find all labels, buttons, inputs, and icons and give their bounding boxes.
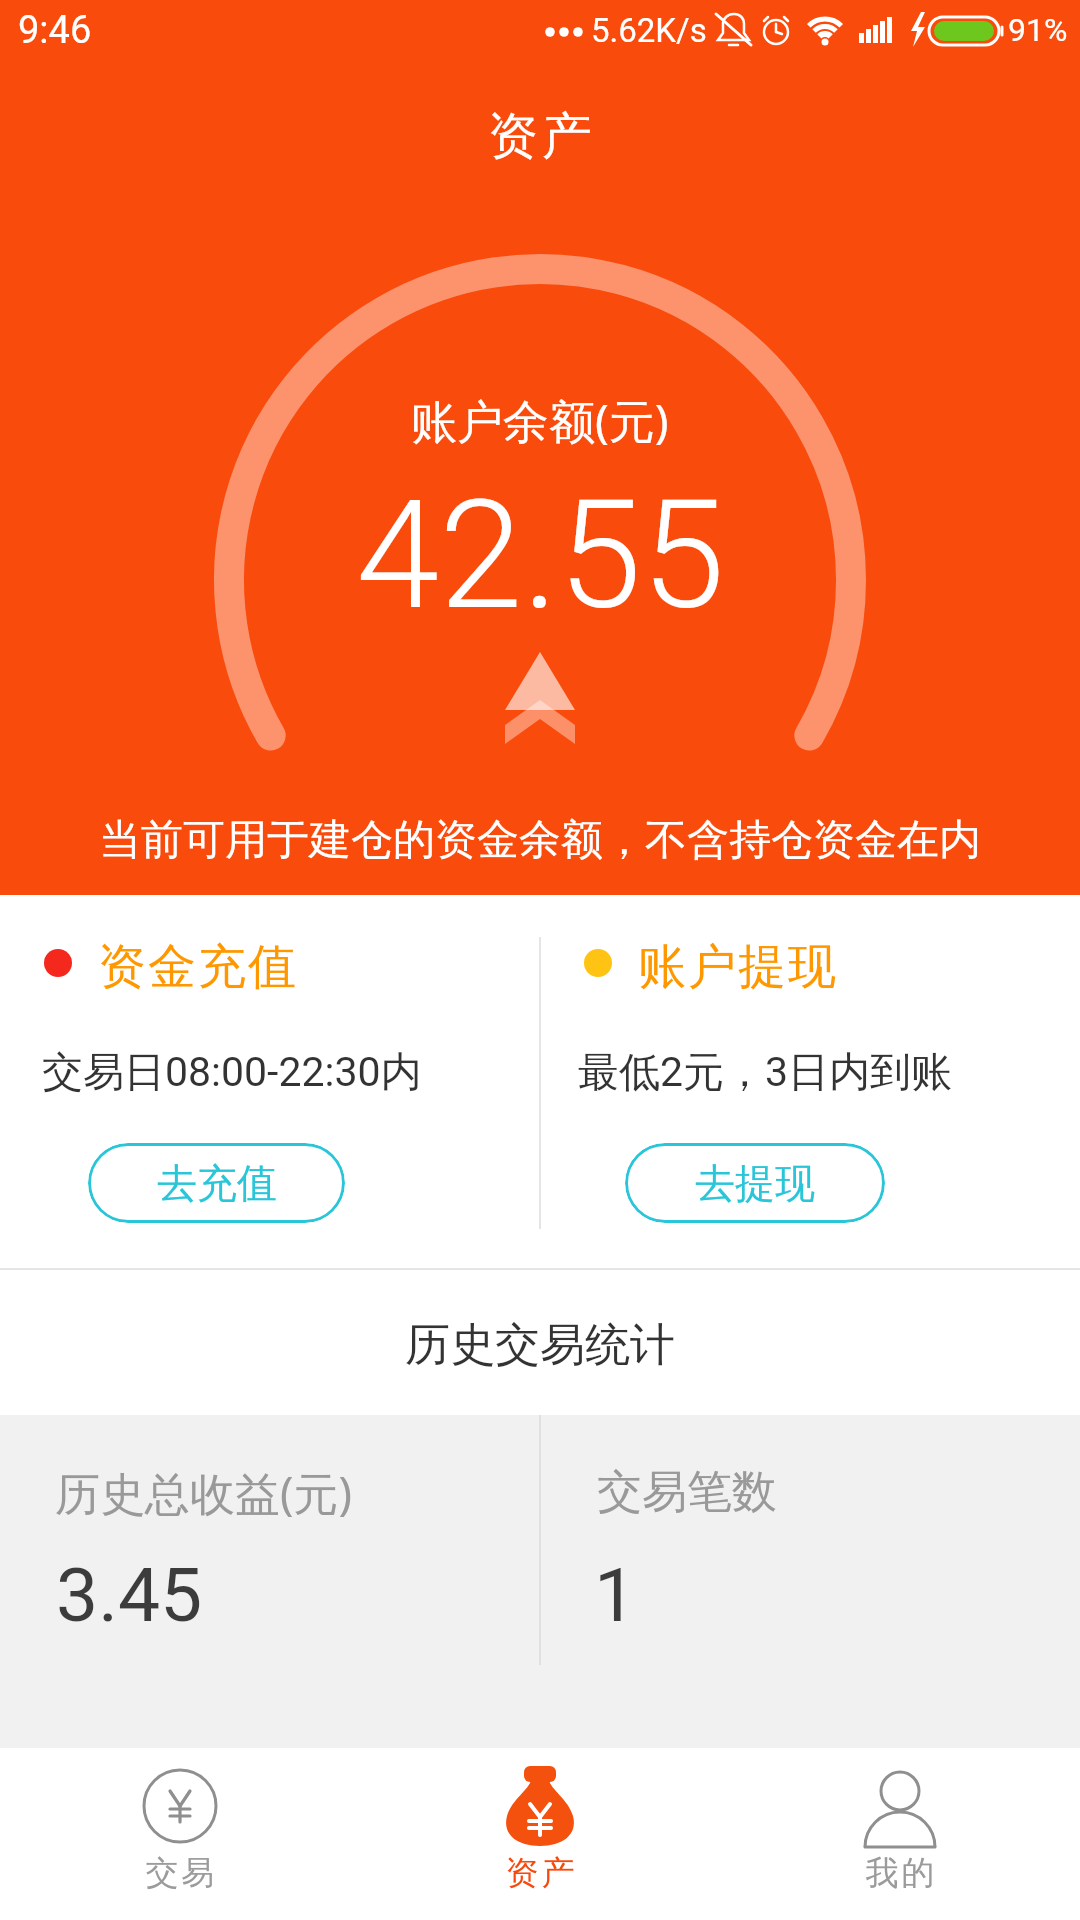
staticText: 最低2元，3日内到账 (578, 1047, 953, 1099)
button[interactable]: 资产 (360, 1748, 720, 1920)
staticText: 3.45 (56, 1551, 203, 1639)
button[interactable]: 去充值 (88, 1143, 345, 1223)
staticText: 我的 (864, 1852, 936, 1894)
staticText: 42.55 (356, 468, 725, 644)
staticText: 去充值 (157, 1158, 277, 1208)
staticText: 账户提现 (637, 937, 837, 997)
staticText: 资产 (504, 1852, 576, 1894)
staticText: 去提现 (695, 1158, 815, 1208)
staticText: 交易 (144, 1852, 216, 1894)
button[interactable]: 去提现 (625, 1143, 885, 1223)
button[interactable]: 交易 (0, 1748, 360, 1920)
staticText: 9:46 (18, 8, 92, 53)
button[interactable]: 我的 (720, 1748, 1080, 1920)
staticText: 当前可用于建仓的资金余额，不含持仓资金在内 (99, 814, 981, 867)
staticText: 91% (1008, 11, 1068, 49)
staticText: 资金充值 (97, 937, 297, 997)
staticText: 资产 (486, 105, 594, 168)
staticText: 历史交易统计 (405, 1317, 675, 1374)
staticText: 交易笔数 (597, 1464, 777, 1521)
staticText: 1 (594, 1551, 637, 1639)
staticText: 历史总收益(元) (55, 1462, 353, 1523)
staticText: 5.62K/s (591, 11, 707, 50)
staticText: 交易日08:00-22:30内 (42, 1047, 422, 1099)
staticText: 账户余额(元) (411, 389, 669, 452)
